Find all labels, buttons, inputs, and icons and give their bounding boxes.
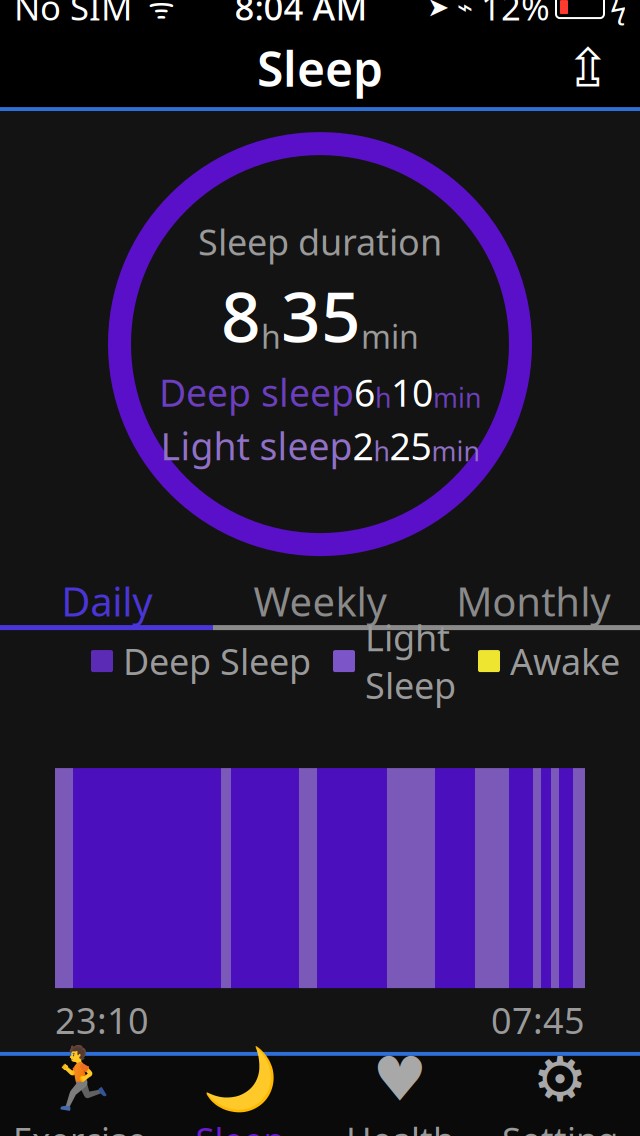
- staticText: Daily: [61, 574, 152, 628]
- staticText: ⚙: [532, 1045, 587, 1114]
- button[interactable]: 🏃: [0, 1056, 160, 1136]
- staticText: min: [361, 315, 419, 357]
- staticText: h: [373, 433, 389, 469]
- staticText: 8:04 AM: [234, 0, 367, 30]
- button[interactable]: 🌙: [160, 1056, 320, 1136]
- button[interactable]: ⚙: [480, 1056, 640, 1136]
- staticText: 2: [352, 421, 373, 471]
- staticText: 23:10: [55, 996, 149, 1044]
- staticText: ♥: [372, 1045, 427, 1114]
- staticText: No SIM: [14, 0, 132, 30]
- staticText: ᯤ: [132, 0, 175, 27]
- staticText: h: [375, 380, 391, 415]
- staticText: Deep Sleep: [123, 637, 311, 685]
- staticText: 12%: [481, 0, 550, 30]
- staticText: 6: [354, 367, 375, 417]
- staticText: Exercise: [13, 1116, 147, 1136]
- staticText: ⇫: [565, 38, 610, 98]
- button[interactable]: ♥: [320, 1056, 480, 1136]
- button[interactable]: Daily: [0, 577, 213, 625]
- staticText: min: [431, 433, 479, 469]
- button[interactable]: Share: [560, 40, 616, 96]
- button[interactable]: Weekly: [213, 577, 427, 625]
- staticText: Setting: [502, 1116, 618, 1136]
- staticText: Sleep: [257, 36, 383, 100]
- staticText: 25: [389, 421, 431, 471]
- staticText: Sleep: [195, 1116, 284, 1136]
- staticText: 🏃: [42, 1044, 118, 1114]
- staticText: 🌙: [202, 1044, 278, 1114]
- staticText: ⌁: [449, 0, 481, 22]
- staticText: h: [261, 315, 281, 357]
- staticText: ➤: [427, 0, 449, 22]
- button[interactable]: Monthly: [427, 577, 640, 625]
- staticText: Deep sleep: [159, 367, 354, 417]
- staticText: 35: [281, 269, 361, 361]
- staticText: min: [433, 380, 481, 415]
- staticText: 10: [391, 367, 433, 417]
- staticText: Weekly: [253, 574, 386, 628]
- staticText: Awake: [510, 637, 620, 685]
- staticText: Light Sleep: [365, 613, 456, 709]
- staticText: Monthly: [456, 574, 610, 628]
- staticText: ϟ: [610, 0, 626, 27]
- staticText: Health: [346, 1116, 454, 1136]
- staticText: Light sleep: [160, 421, 352, 471]
- staticText: 07:45: [491, 996, 585, 1044]
- staticText: 8: [221, 269, 261, 361]
- staticText: Sleep duration: [198, 218, 442, 265]
